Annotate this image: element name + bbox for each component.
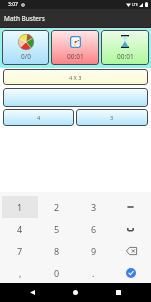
- button[interactable]: Back: [23, 283, 42, 302]
- button[interactable]: ,: [2, 262, 38, 283]
- button[interactable]: Backspace: [112, 240, 149, 262]
- staticText: 4 X 3: [69, 74, 82, 81]
- staticText: ,: [19, 267, 22, 279]
- staticText: 7: [17, 245, 23, 257]
- button[interactable]: 3: [75, 196, 112, 218]
- staticText: 4: [17, 223, 23, 235]
- staticText: 00:01: [67, 52, 84, 61]
- button[interactable]: 00:01: [51, 30, 99, 65]
- button[interactable]: 2: [38, 196, 75, 218]
- button[interactable]: Enter: [126, 268, 136, 278]
- button[interactable]: 4: [2, 218, 38, 240]
- button[interactable]: [112, 196, 149, 218]
- staticText: 9: [91, 245, 97, 257]
- button[interactable]: 0: [38, 262, 75, 283]
- other: Backspace: [124, 245, 138, 257]
- button[interactable]: Recent apps: [109, 283, 128, 302]
- button[interactable]: 0/0: [2, 30, 49, 65]
- button[interactable]: Home: [66, 283, 85, 302]
- staticText: 00:01: [117, 52, 134, 61]
- staticText: Math Busters: [4, 14, 45, 23]
- staticText: .: [92, 267, 95, 279]
- button[interactable]: 4 X 3: [3, 69, 148, 85]
- staticText: LTE: [132, 2, 138, 7]
- button[interactable]: [112, 218, 149, 240]
- button[interactable]: 6: [75, 218, 112, 240]
- staticText: 6: [91, 223, 97, 235]
- staticText: 8: [54, 245, 60, 257]
- staticText: 3: [91, 201, 97, 213]
- button[interactable]: 9: [75, 240, 112, 262]
- staticText: 4: [37, 114, 41, 121]
- staticText: 3: [110, 114, 114, 121]
- button[interactable]: .: [75, 262, 112, 283]
- button[interactable]: 00:01: [101, 30, 149, 65]
- staticText: 5: [54, 223, 60, 235]
- button[interactable]: 8: [38, 240, 75, 262]
- button[interactable]: 1: [2, 196, 38, 218]
- button[interactable]: 3: [76, 109, 148, 126]
- button[interactable]: 5: [38, 218, 75, 240]
- staticText: 1: [17, 201, 23, 213]
- staticText: 2: [54, 201, 60, 213]
- button[interactable]: 7: [2, 240, 38, 262]
- button[interactable]: [3, 88, 148, 107]
- button[interactable]: 4: [3, 109, 74, 126]
- staticText: 3:07: [8, 1, 18, 8]
- staticText: 0/0: [21, 52, 31, 61]
- staticText: 0: [54, 267, 60, 279]
- button[interactable]: Enter: [112, 262, 149, 283]
